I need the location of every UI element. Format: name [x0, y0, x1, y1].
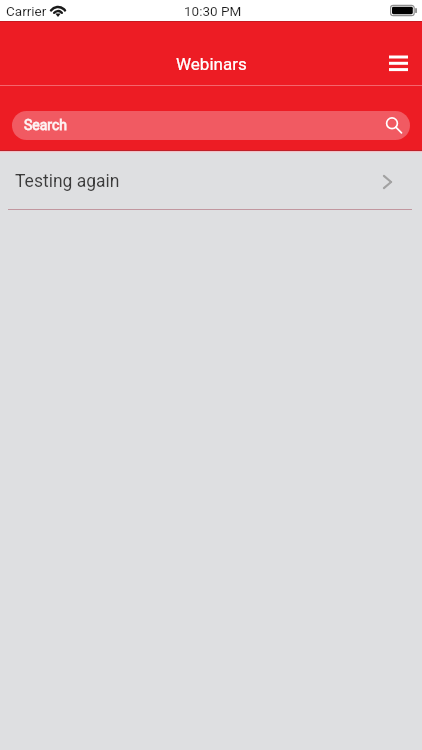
staticText: Search — [24, 117, 68, 133]
button[interactable]: Testing again — [0, 153, 422, 209]
staticText: 10:30 PM — [184, 3, 242, 19]
staticText: Carrier — [6, 3, 47, 19]
button[interactable]: Open navigation menu — [376, 41, 420, 85]
staticText: Testing again — [15, 171, 120, 192]
button[interactable]: Search — [12, 111, 410, 140]
staticText: Webinars — [176, 54, 247, 74]
